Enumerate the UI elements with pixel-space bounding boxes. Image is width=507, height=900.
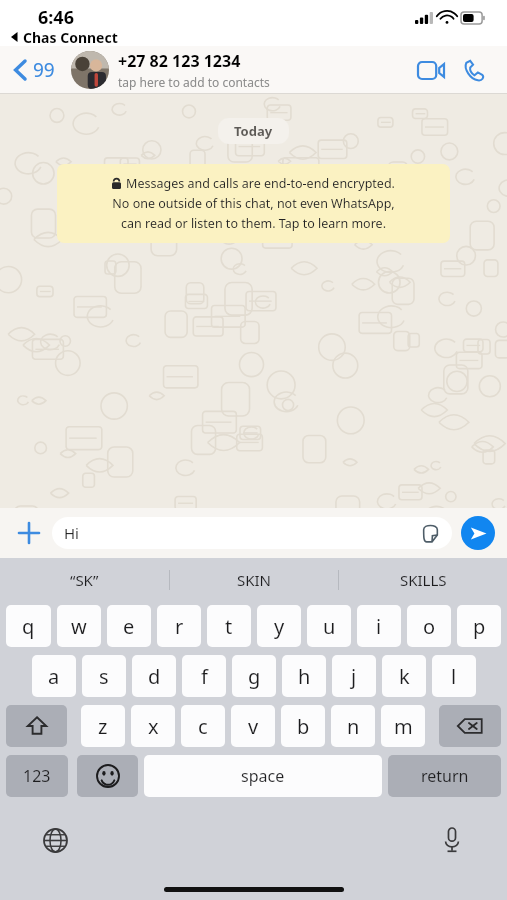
- button[interactable]: Today: [218, 118, 289, 144]
- button[interactable]: c: [181, 705, 225, 747]
- staticText: o: [423, 613, 436, 640]
- button[interactable]: g: [232, 655, 276, 697]
- button[interactable]: s: [82, 655, 126, 697]
- staticText: u: [323, 613, 336, 640]
- button[interactable]: j: [332, 655, 376, 697]
- staticText: r: [175, 613, 184, 640]
- staticText: m: [394, 713, 413, 740]
- button[interactable]: Backspace: [439, 705, 501, 747]
- button[interactable]: h: [282, 655, 326, 697]
- button[interactable]: t: [207, 605, 251, 647]
- button[interactable]: m: [381, 705, 425, 747]
- button[interactable]: Shift: [6, 705, 67, 747]
- button[interactable]: Hi: [52, 517, 452, 549]
- staticText: q: [22, 613, 35, 640]
- staticText: Messages and calls are end-to-end encryp…: [126, 175, 395, 192]
- button[interactable]: x: [131, 705, 175, 747]
- button[interactable]: q: [6, 605, 51, 647]
- button[interactable]: +27 82 123 1234: [71, 50, 409, 90]
- staticText: a: [48, 663, 60, 690]
- staticText: y: [274, 613, 285, 640]
- staticText: No one outside of this chat, not even Wh…: [112, 195, 395, 212]
- button[interactable]: Send: [461, 516, 495, 550]
- button[interactable]: Voice call: [453, 48, 497, 92]
- staticText: d: [148, 663, 161, 690]
- button[interactable]: “SK”: [0, 558, 169, 601]
- button[interactable]: w: [57, 605, 101, 647]
- button[interactable]: n: [331, 705, 375, 747]
- button[interactable]: 99: [10, 57, 59, 83]
- staticText: i: [376, 613, 382, 640]
- staticText: b: [297, 713, 310, 740]
- button[interactable]: f: [182, 655, 226, 697]
- button[interactable]: d: [132, 655, 176, 697]
- staticText: t: [225, 613, 233, 640]
- staticText: l: [451, 663, 457, 690]
- button[interactable]: Emoji: [77, 755, 138, 797]
- staticText: n: [347, 713, 360, 740]
- staticText: 99: [33, 57, 55, 83]
- button[interactable]: u: [307, 605, 351, 647]
- button[interactable]: o: [407, 605, 451, 647]
- button[interactable]: i: [357, 605, 401, 647]
- staticText: w: [71, 613, 87, 640]
- staticText: v: [248, 713, 259, 740]
- button[interactable]: v: [231, 705, 275, 747]
- staticText: z: [98, 713, 108, 740]
- staticText: return: [421, 765, 469, 787]
- button[interactable]: Return: [388, 755, 501, 797]
- button[interactable]: z: [81, 705, 125, 747]
- staticText: k: [399, 663, 410, 690]
- staticText: 6:46: [38, 5, 74, 30]
- button[interactable]: Dictate: [435, 823, 469, 857]
- button[interactable]: k: [382, 655, 426, 697]
- button[interactable]: SKIN: [170, 558, 338, 601]
- staticText: c: [198, 713, 208, 740]
- button[interactable]: e: [107, 605, 151, 647]
- button[interactable]: a: [32, 655, 76, 697]
- button[interactable]: space: [144, 755, 382, 797]
- staticText: s: [99, 663, 109, 690]
- staticText: j: [351, 663, 357, 690]
- staticText: x: [148, 713, 159, 740]
- staticText: h: [298, 663, 311, 690]
- button[interactable]: Change keyboard: [38, 823, 72, 857]
- button[interactable]: SKILLS: [339, 558, 507, 601]
- button[interactable]: l: [432, 655, 476, 697]
- staticText: +27 82 123 1234: [118, 50, 241, 72]
- staticText: Hi: [64, 523, 79, 543]
- staticText: 123: [23, 765, 51, 787]
- staticText: Today: [234, 122, 273, 140]
- staticText: “SK”: [70, 570, 99, 590]
- staticText: f: [201, 663, 208, 690]
- staticText: can read or listen to them. Tap to learn…: [121, 215, 386, 232]
- staticText: p: [473, 613, 486, 640]
- button[interactable]: Attach: [12, 516, 46, 550]
- staticText: tap here to add to contacts: [118, 74, 270, 90]
- button[interactable]: Messages and calls are end-to-end encryp…: [57, 164, 450, 243]
- staticText: g: [248, 663, 261, 690]
- staticText: e: [123, 613, 135, 640]
- button[interactable]: p: [457, 605, 501, 647]
- button[interactable]: Numbers: [6, 755, 68, 797]
- staticText: Chas Connect: [23, 28, 118, 46]
- staticText: SKILLS: [400, 570, 447, 590]
- staticText: space: [241, 765, 285, 787]
- button[interactable]: b: [281, 705, 325, 747]
- button[interactable]: r: [157, 605, 201, 647]
- button[interactable]: y: [257, 605, 301, 647]
- button[interactable]: Video call: [409, 48, 453, 92]
- staticText: SKIN: [237, 570, 272, 590]
